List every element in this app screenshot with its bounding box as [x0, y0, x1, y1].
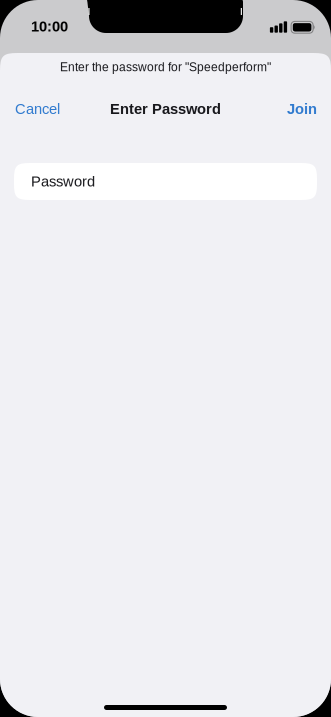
staticText: Enter Password — [110, 101, 221, 117]
staticText: 10:00 — [31, 18, 68, 35]
button[interactable]: Join — [273, 89, 331, 129]
staticText: Join — [287, 101, 317, 117]
button[interactable]: Cancel — [0, 89, 75, 129]
button[interactable]: Password — [14, 163, 317, 200]
staticText: Password — [31, 173, 95, 190]
staticText: Enter the password for "Speedperform" — [60, 60, 271, 74]
staticText: Cancel — [15, 101, 60, 117]
